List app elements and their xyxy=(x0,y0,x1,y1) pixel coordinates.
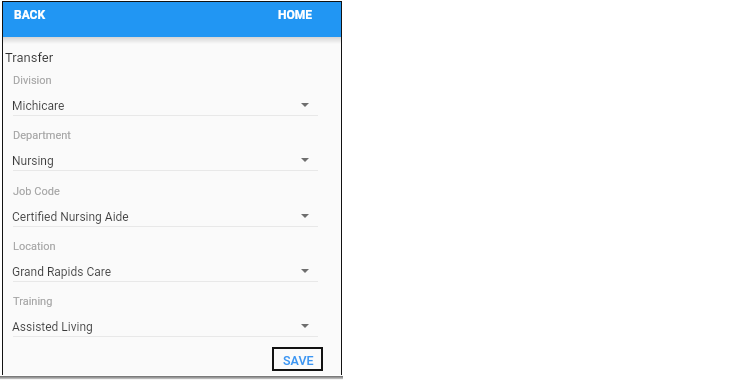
staticText: Job Code xyxy=(13,185,60,198)
staticText: BACK xyxy=(14,8,46,22)
staticText: Department xyxy=(13,129,71,142)
button[interactable]: Job Code xyxy=(2,184,342,239)
other: Open Job Code picker xyxy=(301,214,309,218)
other: Open Division picker xyxy=(301,103,309,107)
staticText: Assisted Living xyxy=(12,320,93,334)
button[interactable]: Location xyxy=(2,239,342,294)
other: Open Location picker xyxy=(301,269,309,273)
other: Open Training picker xyxy=(301,324,309,328)
button[interactable]: SAVE xyxy=(272,347,323,371)
button[interactable]: Division xyxy=(2,73,342,128)
staticText: HOME xyxy=(278,8,313,22)
staticText: Location xyxy=(13,240,56,253)
staticText: Certified Nursing Aide xyxy=(12,210,129,224)
button[interactable]: HOME xyxy=(267,2,323,28)
other: Open Department picker xyxy=(301,158,309,162)
button[interactable]: BACK xyxy=(3,2,57,28)
staticText: Training xyxy=(13,295,53,308)
staticText: Michicare xyxy=(12,99,65,113)
staticText: SAVE xyxy=(283,353,314,368)
staticText: Division xyxy=(13,74,52,87)
staticText: Transfer xyxy=(5,50,54,65)
staticText: Nursing xyxy=(12,154,54,168)
button[interactable]: Training xyxy=(2,294,342,349)
button[interactable]: Department xyxy=(2,128,342,183)
staticText: Grand Rapids Care xyxy=(12,265,112,279)
